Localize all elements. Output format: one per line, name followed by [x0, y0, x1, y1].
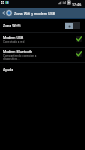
button[interactable]: Wi-Fi hotspot toggle: [65, 22, 80, 29]
button[interactable]: Back: [0, 8, 6, 18]
staticText: 17:46: [72, 2, 82, 7]
staticText: Zona Wifi y modem USB: [14, 11, 56, 16]
staticText: dispositivo...: [3, 57, 20, 60]
staticText: Ayuda: [3, 67, 14, 72]
button[interactable]: Checkbox checked: [0, 33, 85, 47]
staticText: Zona Wi-Fi: [3, 23, 21, 28]
staticText: Modem Bluetooth: [3, 49, 33, 54]
staticText: Compartiendo conexion a: [3, 54, 37, 57]
button[interactable]: Ayuda: [0, 63, 85, 75]
other: Checkbox checked: [76, 51, 82, 57]
button[interactable]: Zona Wi-Fi: [0, 19, 85, 32]
other: Checkbox checked: [76, 36, 82, 42]
button[interactable]: Checkbox checked: [0, 48, 85, 62]
staticText: Conectado a red: [3, 40, 25, 43]
staticText: Modem USB: [3, 35, 24, 40]
